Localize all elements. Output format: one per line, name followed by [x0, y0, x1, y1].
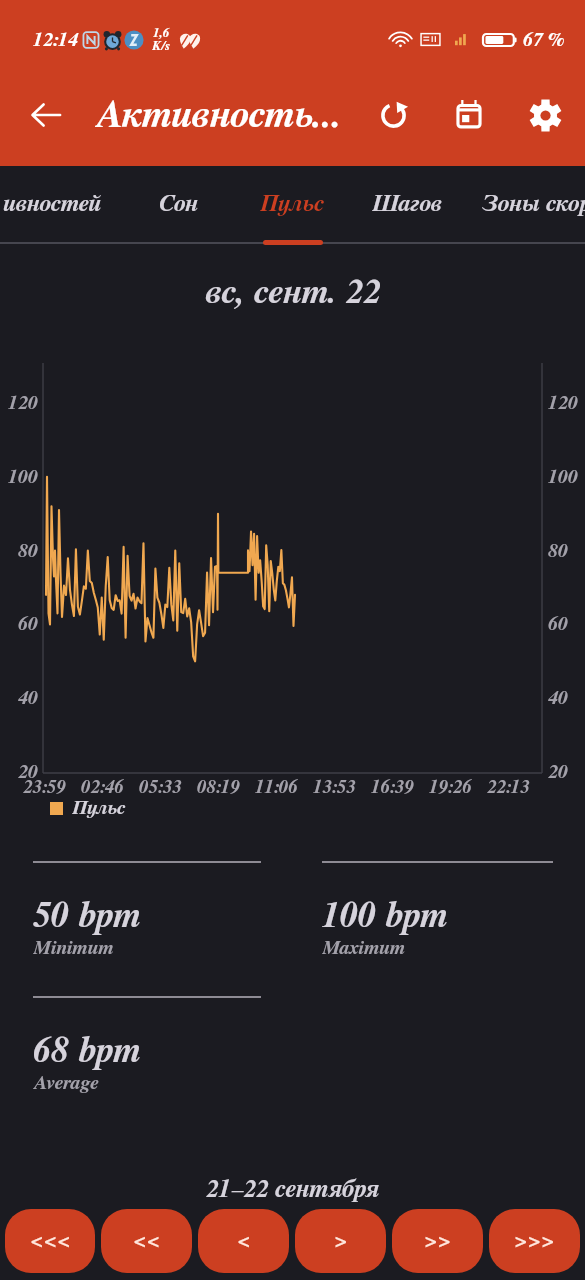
staticText: Minimum: [33, 938, 114, 958]
staticText: 100: [548, 467, 578, 487]
staticText: K/s: [152, 40, 170, 53]
staticText: вс, сент. 22: [205, 275, 381, 310]
staticText: 21–22 сентября: [206, 1177, 380, 1202]
staticText: 120: [548, 393, 578, 413]
staticText: 23:59: [23, 778, 66, 797]
staticText: 20: [548, 762, 568, 782]
staticText: 100 bpm: [322, 898, 448, 934]
staticText: >: [334, 1231, 348, 1251]
staticText: 22:13: [487, 778, 530, 797]
staticText: Maximum: [322, 938, 405, 958]
staticText: Активность...: [95, 96, 342, 135]
staticText: Сон: [159, 192, 198, 216]
staticText: >>: [424, 1231, 452, 1251]
button[interactable]: >: [295, 1209, 386, 1273]
staticText: 68 bpm: [33, 1033, 141, 1069]
staticText: Зоны скор: [482, 192, 585, 216]
staticText: 11:06: [255, 778, 298, 797]
button[interactable]: 68 bpm: [33, 996, 261, 1093]
button[interactable]: ивностей: [0, 171, 122, 237]
button[interactable]: <: [198, 1209, 289, 1273]
button[interactable]: <<: [101, 1209, 192, 1273]
staticText: 60: [18, 614, 38, 634]
staticText: 120: [8, 393, 38, 413]
button[interactable]: Calendar: [443, 89, 495, 141]
staticText: >>>: [514, 1231, 555, 1251]
staticText: <<: [133, 1231, 161, 1251]
staticText: 80: [548, 541, 568, 561]
button[interactable]: >>>: [489, 1209, 580, 1273]
staticText: 19:26: [429, 778, 472, 797]
staticText: 60: [548, 614, 568, 634]
staticText: 40: [18, 688, 38, 708]
button[interactable]: Пульс: [222, 171, 362, 237]
staticText: 16:39: [371, 778, 414, 797]
staticText: 13:53: [313, 778, 356, 797]
staticText: 80: [18, 541, 38, 561]
button[interactable]: Settings: [519, 89, 571, 141]
button[interactable]: <<<: [5, 1209, 95, 1273]
staticText: 67 %: [523, 30, 565, 50]
staticText: Шагов: [372, 192, 442, 216]
staticText: <: [237, 1231, 251, 1251]
staticText: 20: [18, 762, 38, 782]
button[interactable]: Refresh: [367, 89, 419, 141]
staticText: 1,6: [153, 27, 170, 40]
staticText: Average: [33, 1073, 99, 1093]
staticText: 05:33: [139, 778, 182, 797]
button[interactable]: 50 bpm: [33, 861, 261, 958]
staticText: 40: [548, 688, 568, 708]
staticText: 12:14: [33, 30, 78, 50]
button[interactable]: Шагов: [337, 171, 477, 237]
staticText: Пульс: [72, 798, 126, 818]
button[interactable]: >>: [392, 1209, 483, 1273]
button[interactable]: Зоны скор: [466, 171, 585, 237]
staticText: 50 bpm: [33, 898, 141, 934]
button[interactable]: Сон: [108, 171, 248, 237]
button[interactable]: 100 bpm: [322, 861, 553, 958]
button[interactable]: Back: [22, 91, 70, 139]
staticText: 08:19: [197, 778, 240, 797]
staticText: ивностей: [3, 192, 101, 216]
staticText: Пульс: [260, 192, 324, 216]
staticText: 100: [8, 467, 38, 487]
staticText: 02:46: [81, 778, 124, 797]
staticText: <<<: [30, 1231, 71, 1251]
